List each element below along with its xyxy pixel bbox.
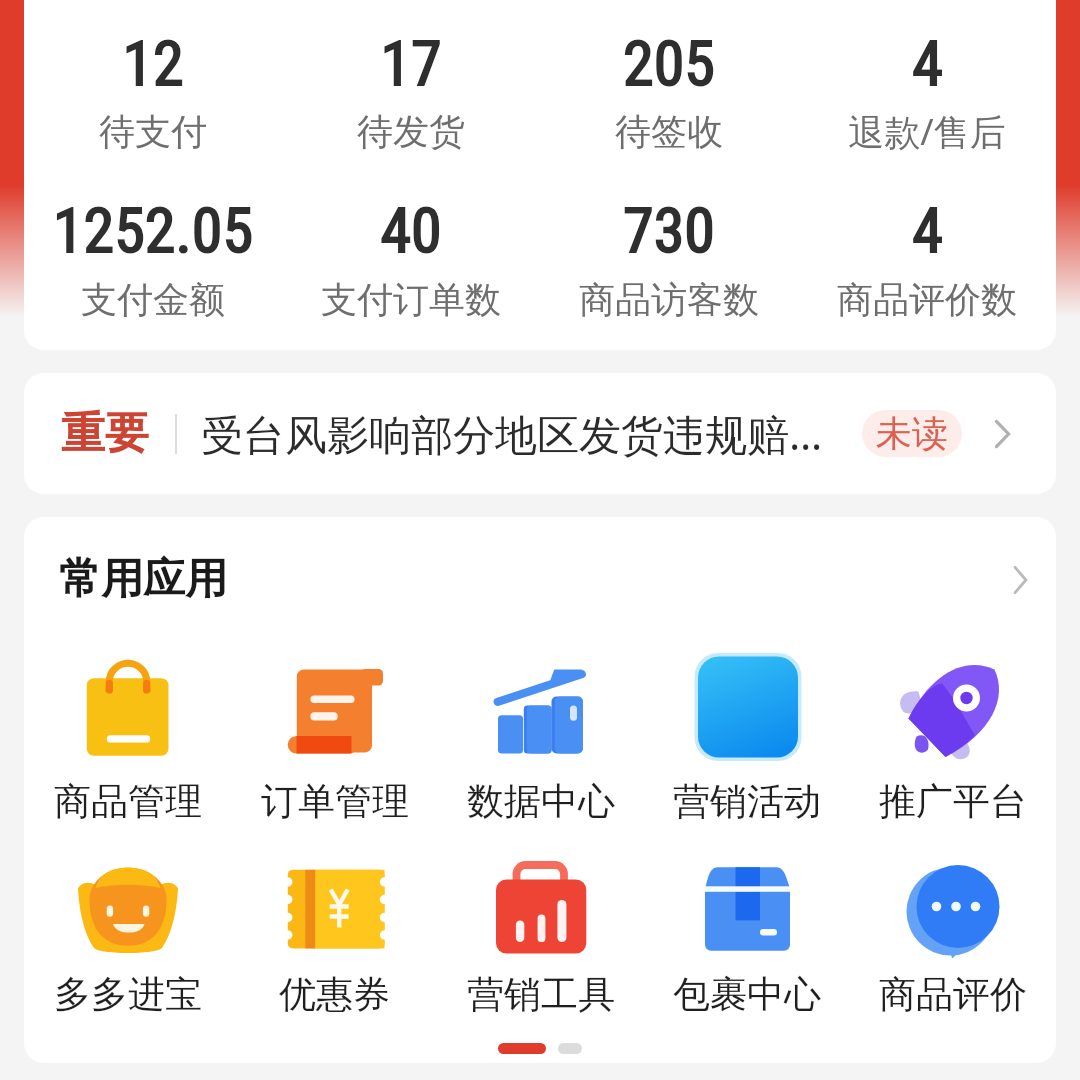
button[interactable]: 4 [798,0,1056,350]
staticText: 重要 [61,406,149,461]
button[interactable]: 重要 [24,373,1056,494]
staticText: 商品评价数 [837,277,1017,322]
staticText: 730 [623,194,715,267]
button[interactable]: 常用应用 [24,543,1056,618]
staticText: 多多进宝 [54,971,202,1018]
staticText: 支付订单数 [321,277,501,322]
button[interactable]: 205 [540,0,798,350]
button[interactable]: 17 [282,0,540,350]
button[interactable]: 数据中心 [438,656,644,825]
other: More [1012,565,1029,595]
staticText: 订单管理 [261,778,409,825]
staticText: 商品访客数 [579,277,759,322]
button[interactable]: 多多进宝 [24,862,231,1018]
staticText: 205 [623,27,715,100]
button[interactable]: 40 [282,0,540,350]
staticText: 包裹中心 [673,971,821,1018]
button[interactable]: 4 [798,0,1056,350]
button[interactable]: 推广平台 [850,656,1056,825]
staticText: 营销活动 [673,778,821,825]
button[interactable]: 730 [540,0,798,350]
staticText: 待发货 [357,109,465,154]
staticText: 4 [912,194,943,267]
button[interactable]: 营销工具 [438,862,644,1018]
button[interactable]: 商品管理 [24,656,231,825]
staticText: 未读 [876,411,948,456]
staticText: 受台风影响部分地区发货违规赔… [201,405,862,462]
staticText: 商品管理 [54,778,202,825]
staticText: 待支付 [99,109,207,154]
staticText: 数据中心 [467,778,615,825]
staticText: 推广平台 [879,778,1027,825]
staticText: 商品评价 [879,971,1027,1018]
button[interactable]: 商品评价 [850,862,1056,1018]
staticText: 常用应用 [59,553,227,606]
button[interactable]: 包裹中心 [644,862,850,1018]
other: More [993,419,1012,449]
staticText: 待签收 [615,109,723,154]
staticText: 支付金额 [81,277,225,322]
button[interactable]: 1252.05 [24,0,282,350]
staticText: 营销工具 [467,971,615,1018]
staticText: 4 [912,27,943,100]
staticText: 40 [380,194,442,267]
button[interactable]: 营销活动 [644,656,850,825]
staticText: 优惠券 [279,971,390,1018]
staticText: 退款/售后 [848,107,1006,156]
staticText: 17 [380,27,442,100]
staticText: 1252.05 [53,194,253,267]
button[interactable]: 订单管理 [231,656,438,825]
staticText: 12 [122,27,184,100]
button[interactable]: 12 [24,0,282,350]
button[interactable]: 优惠券 [231,862,438,1018]
